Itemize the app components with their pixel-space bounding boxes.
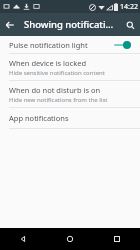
button[interactable]: App notifications: [0, 108, 140, 128]
button[interactable]: Recent apps: [93, 228, 140, 250]
staticText: When do not disturb is on: [9, 85, 101, 95]
button[interactable]: Back: [0, 228, 46, 250]
button[interactable]: Search: [120, 15, 140, 35]
staticText: When device is locked: [9, 58, 87, 68]
staticText: Showing notifications: [24, 18, 114, 31]
staticText: Hide sensitive notification content: [9, 69, 105, 77]
button[interactable]: Home: [46, 228, 93, 250]
staticText: Hide new notifications from the list: [9, 96, 108, 104]
staticText: Pulse notification light: [9, 40, 113, 50]
button[interactable]: Back: [0, 15, 20, 35]
staticText: 14:22: [120, 2, 138, 12]
button[interactable]: When device is locked: [0, 54, 140, 80]
staticText: App notifications: [9, 113, 69, 123]
button[interactable]: When do not disturb is on: [0, 81, 140, 107]
button[interactable]: Pulse notification light: [0, 36, 140, 53]
